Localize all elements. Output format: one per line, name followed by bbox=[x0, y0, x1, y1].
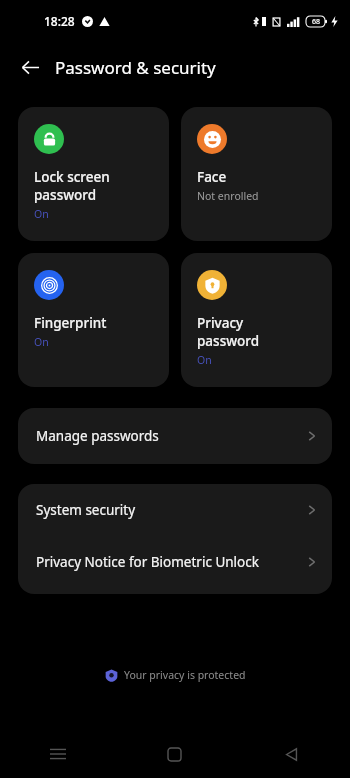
button[interactable]: Recent apps bbox=[0, 730, 116, 778]
staticText: On bbox=[34, 207, 49, 221]
staticText: 68 bbox=[312, 17, 321, 27]
staticText: Your privacy is protected bbox=[124, 668, 246, 682]
button[interactable]: Lock screen password bbox=[18, 107, 169, 241]
button[interactable]: Back bbox=[10, 47, 50, 87]
staticText: System security bbox=[36, 501, 308, 519]
staticText: Lock screen password bbox=[34, 168, 110, 204]
button[interactable]: Privacy password bbox=[181, 253, 332, 387]
staticText: On bbox=[197, 353, 212, 367]
staticText: Fingerprint bbox=[34, 314, 107, 332]
staticText: Privacy password bbox=[197, 314, 260, 350]
button[interactable]: Fingerprint bbox=[18, 253, 169, 387]
staticText: Password & security bbox=[55, 56, 216, 79]
button[interactable]: Manage passwords bbox=[18, 408, 332, 464]
staticText: 18:28 bbox=[44, 13, 75, 29]
button[interactable]: Face bbox=[181, 107, 332, 241]
staticText: Not enrolled bbox=[197, 189, 259, 203]
staticText: Manage passwords bbox=[36, 427, 308, 445]
staticText: Face bbox=[197, 168, 227, 186]
button[interactable]: System security bbox=[18, 484, 332, 536]
staticText: On bbox=[34, 335, 49, 349]
button[interactable]: Privacy Notice for Biometric Unlock bbox=[18, 536, 332, 588]
button[interactable]: Back bbox=[233, 730, 350, 778]
button[interactable]: Home bbox=[116, 730, 233, 778]
staticText: Privacy Notice for Biometric Unlock bbox=[36, 553, 308, 571]
